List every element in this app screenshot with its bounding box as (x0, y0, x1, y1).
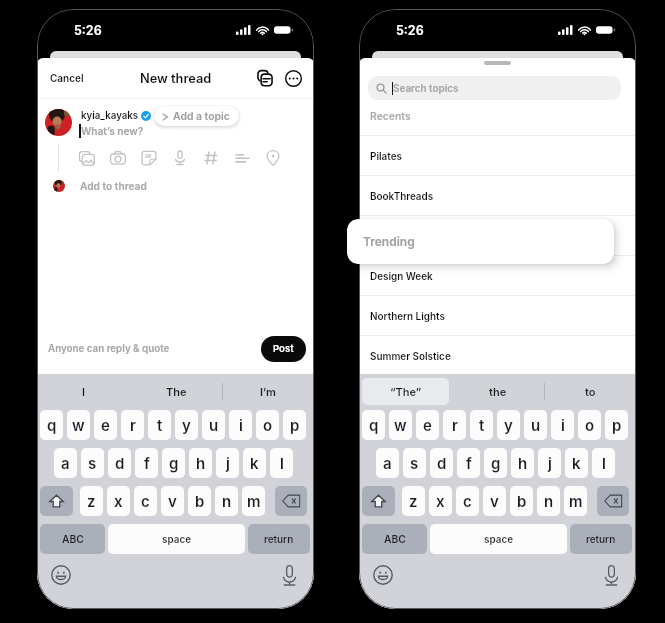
button[interactable]: Drafts (252, 65, 278, 91)
button[interactable]: e (416, 410, 439, 440)
staticText: s (88, 454, 97, 472)
button[interactable]: n (537, 486, 560, 516)
button[interactable]: Add GIF (139, 148, 159, 168)
button[interactable]: o (578, 410, 601, 440)
button[interactable]: r (121, 410, 144, 440)
staticText: to (585, 385, 596, 398)
button[interactable]: “The” (362, 378, 449, 405)
button[interactable]: Record voice (170, 148, 190, 168)
button[interactable]: Add a topic (154, 106, 239, 126)
button[interactable]: Dictate (282, 565, 297, 586)
button[interactable]: Trending (347, 219, 614, 264)
button[interactable]: Pilates (359, 135, 636, 175)
button[interactable]: x (429, 486, 452, 516)
button[interactable]: Shift (40, 486, 73, 516)
button[interactable]: Emoji keyboard (373, 565, 393, 585)
button[interactable]: w (389, 410, 412, 440)
button[interactable]: v (483, 486, 506, 516)
button[interactable]: ABC (362, 524, 427, 554)
staticText: Add a topic (173, 110, 230, 123)
button[interactable]: Cancel (37, 66, 94, 90)
button[interactable]: z (402, 486, 425, 516)
button[interactable]: the (452, 374, 544, 409)
button[interactable]: q (362, 410, 385, 440)
button[interactable]: f (457, 448, 480, 478)
button[interactable]: a (54, 448, 77, 478)
staticText: h (196, 454, 206, 472)
button[interactable]: BookThreads (359, 175, 636, 215)
button[interactable]: I’m (222, 374, 314, 409)
button[interactable]: s (403, 448, 426, 478)
button[interactable]: d (430, 448, 453, 478)
button[interactable]: b (510, 486, 533, 516)
button[interactable]: p (283, 410, 306, 440)
button[interactable]: Summer Solstice (359, 335, 636, 375)
button[interactable]: h (189, 448, 212, 478)
button[interactable] (359, 215, 636, 255)
button[interactable]: Add tag (201, 148, 221, 168)
button[interactable]: o (256, 410, 279, 440)
button[interactable]: Backspace (597, 486, 629, 516)
button[interactable]: The (130, 374, 222, 409)
button[interactable]: return (570, 524, 632, 554)
button[interactable]: g (162, 448, 185, 478)
button[interactable]: y (497, 410, 520, 440)
button[interactable]: l (270, 448, 293, 478)
button[interactable]: space (430, 524, 567, 554)
button[interactable]: w (67, 410, 90, 440)
button[interactable]: j (216, 448, 239, 478)
button[interactable]: d (108, 448, 131, 478)
button[interactable]: Emoji keyboard (51, 565, 71, 585)
button[interactable]: e (94, 410, 117, 440)
button[interactable]: b (188, 486, 211, 516)
button[interactable]: n (215, 486, 238, 516)
button[interactable]: m (242, 486, 265, 516)
button[interactable]: t (148, 410, 171, 440)
button[interactable]: a (376, 448, 399, 478)
staticText: j (548, 454, 552, 472)
button[interactable]: s (81, 448, 104, 478)
button[interactable]: i (551, 410, 574, 440)
button[interactable]: y (175, 410, 198, 440)
button[interactable]: r (443, 410, 466, 440)
button[interactable]: l (592, 448, 615, 478)
button[interactable]: c (134, 486, 157, 516)
button[interactable]: i (229, 410, 252, 440)
button[interactable]: Search topics (368, 76, 621, 100)
button[interactable]: Create poll (232, 148, 252, 168)
button[interactable]: Northern Lights (359, 295, 636, 335)
button[interactable]: Shift (362, 486, 395, 516)
button[interactable]: Dictate (604, 565, 619, 586)
button[interactable]: u (524, 410, 547, 440)
button[interactable]: return (248, 524, 310, 554)
button[interactable]: k (243, 448, 266, 478)
button[interactable]: p (605, 410, 628, 440)
button[interactable]: Add photos (77, 148, 97, 168)
button[interactable]: to (544, 374, 636, 409)
button[interactable]: h (511, 448, 534, 478)
button[interactable]: u (202, 410, 225, 440)
button[interactable]: Add location (263, 148, 283, 168)
button[interactable]: x (107, 486, 130, 516)
button[interactable]: v (161, 486, 184, 516)
button[interactable]: Anyone can reply & quote (48, 343, 170, 355)
button[interactable]: c (456, 486, 479, 516)
button[interactable]: Add to thread (37, 176, 314, 196)
button[interactable]: t (470, 410, 493, 440)
button[interactable]: z (80, 486, 103, 516)
button[interactable]: Camera (108, 148, 128, 168)
button[interactable]: I (37, 374, 130, 409)
button[interactable]: g (484, 448, 507, 478)
button[interactable]: m (564, 486, 587, 516)
button[interactable]: f (135, 448, 158, 478)
button[interactable]: Post (261, 336, 306, 362)
button[interactable]: q (40, 410, 63, 440)
button[interactable]: More options (280, 65, 306, 91)
button[interactable]: Backspace (275, 486, 307, 516)
button[interactable]: Design Week (359, 255, 636, 295)
button[interactable]: j (538, 448, 561, 478)
button[interactable]: space (108, 524, 245, 554)
staticText: 5:26 (74, 23, 102, 38)
button[interactable]: ABC (40, 524, 105, 554)
button[interactable]: k (565, 448, 588, 478)
